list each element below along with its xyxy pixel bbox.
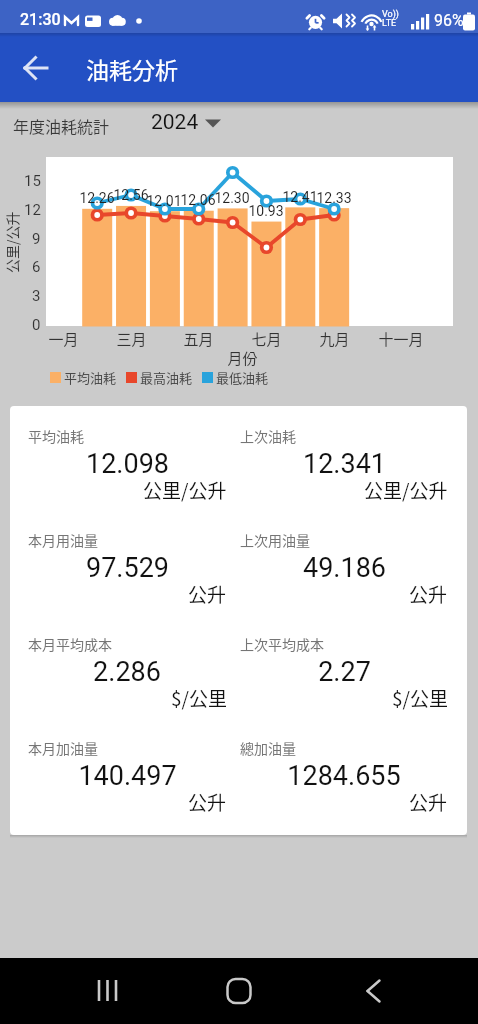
staticText: 公升 — [409, 788, 448, 816]
button[interactable] — [14, 46, 58, 90]
staticText: 公升 — [409, 580, 448, 608]
staticText: 油耗分析 — [86, 52, 178, 85]
staticText: 12.098 — [86, 448, 169, 480]
staticText: 2.286 — [93, 656, 161, 688]
button[interactable]: 2024 — [145, 104, 227, 141]
staticText: 12.56 — [113, 187, 149, 203]
staticText: 2024 — [151, 110, 199, 135]
staticText: $/公里 — [171, 684, 227, 712]
button[interactable] — [78, 961, 138, 1021]
staticText: 上次用油量 — [240, 530, 310, 550]
staticText: 12.341 — [303, 448, 386, 480]
staticText: 140.497 — [78, 760, 177, 792]
staticText: 五月 — [183, 328, 214, 350]
staticText: Vo)) — [382, 9, 399, 20]
staticText: $/公里 — [392, 684, 448, 712]
staticText: 年度油耗統計 — [13, 114, 110, 137]
staticText: 平均油耗 — [64, 368, 117, 387]
staticText: 總加油量 — [240, 738, 296, 758]
staticText: 一月 — [48, 328, 79, 350]
staticText: 上次平均成本 — [240, 634, 324, 654]
staticText: LTE — [382, 18, 397, 29]
staticText: 公升 — [188, 580, 227, 608]
staticText: 月份 — [227, 347, 258, 369]
staticText: 12.06 — [180, 192, 216, 208]
staticText: 最高油耗 — [140, 368, 193, 387]
staticText: 七月 — [251, 328, 282, 350]
staticText: 公升 — [188, 788, 227, 816]
staticText: 21:30 — [20, 10, 61, 29]
staticText: 12 — [24, 201, 41, 219]
staticText: 96% — [434, 11, 464, 30]
staticText: 12.26 — [79, 190, 115, 206]
staticText: 公里/公升 — [2, 211, 22, 273]
staticText: 12.41 — [282, 189, 318, 205]
staticText: 12.30 — [214, 190, 250, 206]
staticText: 49.186 — [303, 552, 386, 584]
staticText: 97.529 — [86, 552, 169, 584]
staticText: 最低油耗 — [216, 368, 269, 387]
staticText: 公里/公升 — [364, 476, 448, 504]
staticText: 9 — [32, 230, 41, 248]
staticText: 十一月 — [378, 328, 424, 350]
staticText: 0 — [32, 316, 41, 334]
staticText: 6 — [32, 258, 41, 276]
button[interactable] — [343, 961, 403, 1021]
staticText: 12.33 — [316, 190, 352, 206]
staticText: 平均油耗 — [28, 426, 84, 446]
staticText: 1284.655 — [287, 760, 401, 792]
staticText: 上次油耗 — [240, 426, 296, 446]
staticText: 3 — [32, 287, 41, 305]
staticText: 10.93 — [248, 203, 284, 219]
staticText: 本月用油量 — [28, 530, 98, 550]
staticText: 三月 — [116, 328, 147, 350]
staticText: 本月平均成本 — [28, 634, 112, 654]
staticText: 九月 — [319, 328, 350, 350]
staticText: 15 — [24, 172, 41, 190]
staticText: 本月加油量 — [28, 738, 98, 758]
button[interactable] — [209, 961, 269, 1021]
staticText: 公里/公升 — [143, 476, 227, 504]
staticText: 12.01 — [146, 193, 182, 209]
staticText: 2.27 — [318, 656, 371, 688]
